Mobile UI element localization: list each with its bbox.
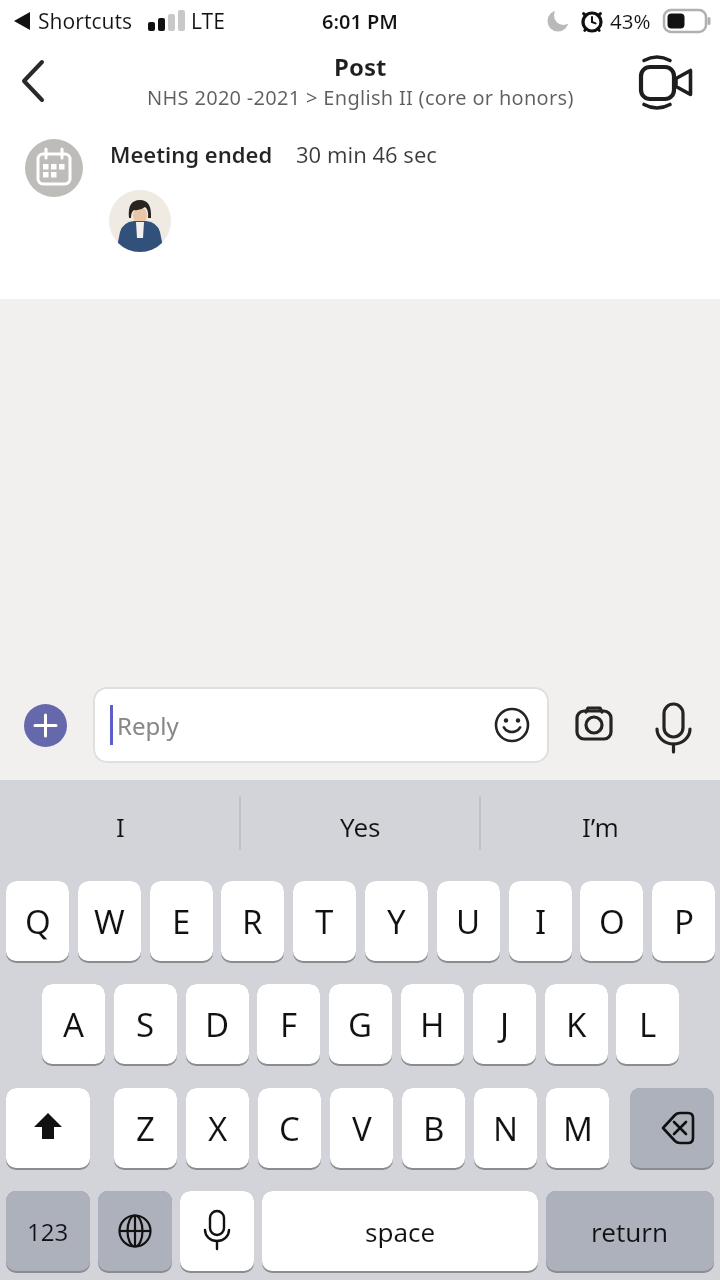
button[interactable]: N bbox=[474, 1088, 537, 1170]
staticText: space bbox=[365, 1214, 436, 1249]
button[interactable]: Q bbox=[6, 881, 69, 963]
staticText: Yes bbox=[340, 809, 381, 844]
staticText: Meeting ended bbox=[110, 139, 273, 169]
staticText: Y bbox=[387, 899, 406, 944]
staticText: D bbox=[205, 1002, 230, 1047]
staticText: Z bbox=[136, 1106, 155, 1151]
staticText: L bbox=[639, 1002, 657, 1047]
button[interactable] bbox=[654, 700, 694, 756]
button[interactable] bbox=[630, 1088, 714, 1170]
staticText: O bbox=[599, 899, 625, 944]
staticText: C bbox=[279, 1106, 300, 1151]
staticText: Shortcuts bbox=[38, 7, 133, 36]
staticText: T bbox=[315, 899, 334, 944]
staticText: B bbox=[423, 1106, 445, 1151]
button[interactable]: R bbox=[221, 881, 284, 963]
button[interactable]: O bbox=[580, 881, 643, 963]
staticText: LTE bbox=[191, 7, 225, 36]
staticText: 43% bbox=[610, 7, 651, 35]
staticText: G bbox=[348, 1002, 373, 1047]
button[interactable]: T bbox=[293, 881, 356, 963]
button[interactable] bbox=[98, 1191, 172, 1273]
staticText: I bbox=[535, 899, 547, 944]
button[interactable]: J bbox=[473, 984, 536, 1066]
staticText: W bbox=[94, 899, 125, 944]
staticText: A bbox=[63, 1002, 85, 1047]
staticText: M bbox=[563, 1106, 593, 1151]
staticText: I’m bbox=[582, 809, 619, 844]
staticText: 6:01 PM bbox=[322, 8, 398, 35]
button[interactable]: X bbox=[186, 1088, 249, 1170]
button[interactable]: I bbox=[509, 881, 572, 963]
button[interactable]: V bbox=[330, 1088, 393, 1170]
staticText: J bbox=[500, 1002, 510, 1047]
staticText: H bbox=[420, 1002, 445, 1047]
staticText: NHS 2020 -2021 > English II (core or hon… bbox=[147, 84, 574, 111]
button[interactable]: H bbox=[401, 984, 464, 1066]
button[interactable]: P bbox=[652, 881, 715, 963]
staticText: Reply bbox=[117, 709, 179, 742]
staticText: R bbox=[242, 899, 263, 944]
staticText: V bbox=[352, 1106, 372, 1151]
button[interactable] bbox=[24, 704, 67, 747]
staticText: 30 min 46 sec bbox=[296, 139, 437, 169]
staticText: E bbox=[172, 899, 191, 944]
button[interactable]: Y bbox=[365, 881, 428, 963]
button[interactable] bbox=[630, 52, 700, 112]
staticText: X bbox=[208, 1106, 228, 1151]
button[interactable]: L bbox=[616, 984, 679, 1066]
staticText: N bbox=[493, 1106, 519, 1151]
button[interactable]: return bbox=[546, 1191, 714, 1273]
staticText: U bbox=[456, 899, 481, 944]
staticText: F bbox=[280, 1002, 298, 1047]
staticText: I bbox=[116, 809, 125, 844]
button[interactable] bbox=[109, 190, 171, 252]
button[interactable]: F bbox=[257, 984, 320, 1066]
staticText: K bbox=[566, 1002, 587, 1047]
button[interactable]: Reply bbox=[93, 687, 549, 763]
button[interactable]: M bbox=[546, 1088, 609, 1170]
button[interactable]: G bbox=[329, 984, 392, 1066]
button[interactable]: B bbox=[402, 1088, 465, 1170]
staticText: Post bbox=[334, 50, 387, 83]
button[interactable]: K bbox=[545, 984, 608, 1066]
staticText: 123 bbox=[27, 1215, 69, 1248]
button[interactable]: C bbox=[258, 1088, 321, 1170]
button[interactable]: W bbox=[78, 881, 141, 963]
button[interactable]: 123 bbox=[6, 1191, 90, 1273]
button[interactable] bbox=[6, 1088, 90, 1170]
button[interactable] bbox=[574, 703, 618, 747]
staticText: P bbox=[674, 899, 694, 944]
button[interactable]: A bbox=[42, 984, 105, 1066]
button[interactable]: space bbox=[262, 1191, 538, 1273]
staticText: return bbox=[591, 1214, 669, 1249]
button[interactable] bbox=[180, 1191, 254, 1273]
staticText: S bbox=[136, 1002, 155, 1047]
staticText: Q bbox=[25, 899, 51, 944]
button[interactable] bbox=[8, 56, 60, 108]
button[interactable]: E bbox=[150, 881, 213, 963]
button[interactable]: Z bbox=[114, 1088, 177, 1170]
button[interactable]: U bbox=[437, 881, 500, 963]
button[interactable]: D bbox=[186, 984, 249, 1066]
button[interactable]: S bbox=[114, 984, 177, 1066]
